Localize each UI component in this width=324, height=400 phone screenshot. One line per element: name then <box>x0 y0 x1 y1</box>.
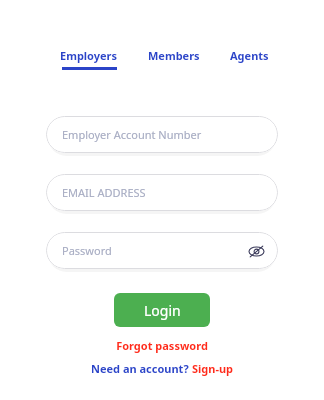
staticText: Employers <box>60 48 118 63</box>
button[interactable]: Toggle password visibility <box>246 241 266 261</box>
staticText: Employer Account Number <box>62 127 266 142</box>
button[interactable]: EMAIL ADDRESS <box>46 174 278 211</box>
button[interactable]: Members <box>146 48 202 70</box>
staticText: Password <box>62 243 246 258</box>
button[interactable]: Login <box>114 293 210 327</box>
button[interactable]: Agents <box>228 48 271 70</box>
staticText: Members <box>148 48 200 63</box>
button[interactable]: Employer Account Number <box>46 116 278 153</box>
staticText: Agents <box>230 48 269 63</box>
staticText: Sign-up <box>192 361 234 376</box>
button[interactable]: Password <box>46 232 278 269</box>
staticText: EMAIL ADDRESS <box>62 185 266 200</box>
button[interactable]: Employers <box>58 48 120 70</box>
button[interactable]: Need an account? <box>91 361 234 376</box>
staticText: Forgot password <box>116 338 208 353</box>
staticText: Need an account? <box>91 361 192 376</box>
button[interactable]: Forgot password <box>116 338 208 353</box>
staticText: Login <box>144 301 181 320</box>
